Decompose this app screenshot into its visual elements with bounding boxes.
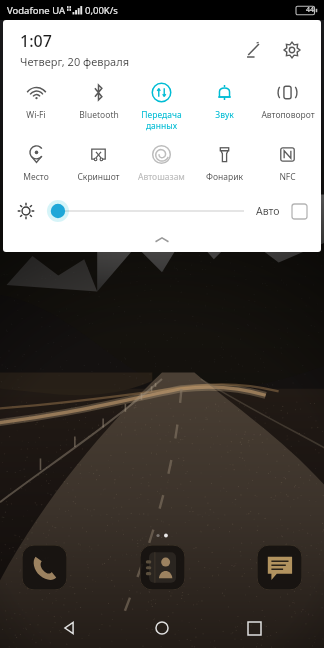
staticText: Wi-Fi [26, 109, 46, 121]
staticText: 44 [306, 5, 315, 15]
staticText: Скриншот [77, 171, 120, 183]
staticText: Авто [256, 204, 280, 218]
staticText: Автоповорот [261, 109, 315, 121]
button[interactable]: Передача данных [130, 80, 193, 133]
staticText: Звук [215, 109, 234, 121]
staticText: 1:07 [20, 30, 52, 52]
button[interactable]: Collapse [3, 231, 321, 249]
staticText: Четверг, 20 февраля [20, 54, 130, 69]
button[interactable]: Место [5, 142, 67, 185]
button[interactable]: Phone [22, 545, 67, 590]
staticText: Bluetooth [79, 109, 119, 121]
staticText: Vodafone UA [7, 4, 66, 17]
button[interactable]: Recents [232, 608, 276, 648]
staticText: Передача данных [141, 109, 182, 131]
button[interactable]: Back [48, 608, 92, 648]
button[interactable]: Settings [277, 35, 307, 65]
button[interactable]: Фонарик [193, 142, 256, 185]
staticText: 0,00K/s [85, 4, 118, 17]
button[interactable]: Home [140, 608, 184, 648]
button[interactable]: Wi-Fi [5, 80, 67, 123]
button[interactable]: Brightness slider [45, 199, 244, 223]
button[interactable]: Messages [257, 545, 302, 590]
button[interactable]: NFC [256, 142, 319, 185]
button[interactable]: Автоповорот [256, 80, 319, 123]
staticText: Автошазам [138, 171, 185, 183]
staticText: Место [23, 171, 49, 183]
button[interactable]: Edit [237, 35, 267, 65]
button[interactable]: Auto brightness [289, 201, 309, 221]
button[interactable]: Автошазам [130, 142, 193, 185]
button[interactable]: Звук [193, 80, 256, 123]
button[interactable]: Bluetooth [67, 80, 130, 123]
staticText: NFC [279, 171, 296, 183]
button[interactable]: Скриншот [67, 142, 130, 185]
staticText: Фонарик [206, 171, 243, 183]
button[interactable]: Contacts [140, 545, 185, 590]
